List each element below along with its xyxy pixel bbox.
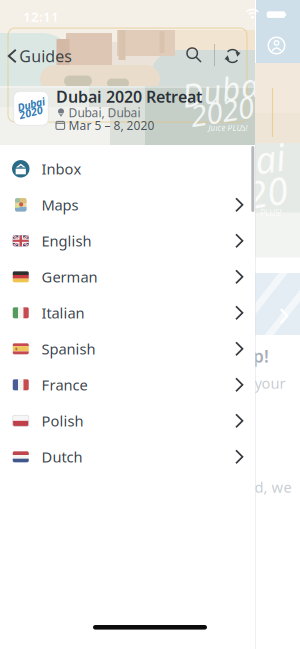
button[interactable]: Refresh [225, 49, 240, 63]
staticText: Polish [41, 411, 83, 431]
staticText: German [41, 267, 97, 287]
staticText: Dubai 2020 Retreat [56, 86, 202, 107]
staticText: Italian [41, 303, 84, 323]
staticText: Inbox [41, 159, 81, 179]
staticText: Spanish [41, 339, 95, 359]
staticText: Dutch [41, 447, 82, 467]
button[interactable]: Inbox [0, 151, 255, 187]
staticText: 20 [246, 167, 288, 217]
staticText: France [41, 375, 87, 395]
button[interactable]: Search [187, 48, 201, 62]
button[interactable]: Maps [0, 187, 255, 223]
button[interactable]: Back [9, 44, 72, 68]
staticText: your [254, 373, 285, 393]
staticText: 2020 [190, 91, 254, 130]
button[interactable]: France [0, 367, 255, 403]
staticText: Maps [41, 195, 78, 215]
button[interactable]: Profile [268, 37, 285, 54]
button[interactable]: Spanish [0, 331, 255, 367]
staticText: p! [253, 344, 269, 367]
staticText: Juice PLUS! [208, 123, 247, 133]
staticText: 2020 [19, 105, 43, 119]
staticText: English [41, 231, 91, 251]
staticText: PLUS! [260, 208, 281, 218]
button[interactable]: Dutch [0, 439, 255, 475]
staticText: Mar 5 – 8, 2020 [69, 117, 155, 133]
staticText: Guides [19, 45, 72, 67]
button[interactable]: Polish [0, 403, 255, 439]
button[interactable]: German [0, 259, 255, 295]
staticText: Dubai [17, 97, 45, 111]
staticText: ai [254, 133, 285, 183]
staticText: Dubai, Dubai [68, 105, 140, 120]
button[interactable]: English [0, 223, 255, 259]
button[interactable]: Italian [0, 295, 255, 331]
staticText: Dubai [181, 68, 266, 110]
staticText: 12:11 [23, 8, 59, 25]
staticText: ed, we [246, 477, 291, 497]
